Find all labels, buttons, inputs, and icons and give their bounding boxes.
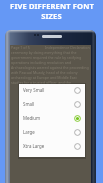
staticText: archaeology at Europe and Middle East (11, 75, 77, 80)
staticText: SIZES (41, 11, 62, 21)
staticText: Archaeologists warred against the procee… (11, 65, 89, 70)
button[interactable]: Xtra Large (19, 140, 85, 154)
staticText: government required the rule by ratifyin… (11, 55, 82, 60)
button[interactable]: Very Small (19, 84, 85, 98)
staticText: Very Small (23, 87, 45, 93)
button[interactable]: Large (19, 126, 85, 140)
staticText: with Pascual Muady, head of the colony (11, 70, 78, 75)
staticText: studies for a trusted officer, and the (11, 80, 72, 85)
button[interactable]: Small (19, 98, 85, 112)
staticText: operations including revolution and (11, 60, 72, 65)
button[interactable]: Medium (19, 112, 85, 126)
staticText: Page 1 of 5 (11, 45, 30, 50)
staticText: Large (23, 129, 35, 135)
staticText: Independence Declaration (45, 45, 90, 50)
staticText: ceremony by doing everything that the (11, 50, 77, 55)
staticText: Small (23, 101, 35, 107)
staticText: Medium (23, 115, 41, 121)
staticText: Xtra Large (23, 143, 45, 149)
staticText: FIVE DIFFERENT FONT (10, 1, 94, 11)
